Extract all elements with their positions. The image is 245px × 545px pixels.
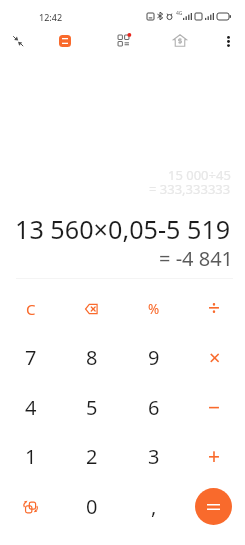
button[interactable]: Unit converter	[0, 482, 61, 531]
staticText: %	[148, 300, 160, 318]
staticText: 13 560×0,05-5 519	[15, 212, 231, 246]
staticText: +	[208, 442, 221, 471]
staticText: 15 000÷45	[168, 166, 231, 184]
button[interactable]: 0	[61, 482, 122, 531]
staticText: C	[26, 299, 36, 319]
button[interactable]: 6	[123, 383, 184, 432]
staticText: 1	[25, 443, 37, 470]
staticText: 7	[25, 344, 37, 371]
staticText: ,	[151, 493, 157, 520]
staticText: = -4 841	[159, 245, 234, 272]
button[interactable]: Apps	[110, 27, 136, 53]
staticText: 0	[86, 493, 98, 520]
staticText: 8	[86, 344, 98, 371]
button[interactable]: 2	[61, 432, 122, 481]
button[interactable]: C	[0, 284, 61, 333]
staticText: 6	[148, 394, 160, 421]
button[interactable]: 7	[0, 333, 61, 382]
staticText: ÷	[208, 294, 221, 323]
button[interactable]: Backspace	[61, 284, 122, 333]
staticText: 3	[148, 443, 160, 470]
staticText: = 333,333333	[149, 180, 231, 198]
staticText: 5	[86, 394, 98, 421]
staticText: 12:42	[39, 11, 63, 23]
button[interactable]: Equals	[195, 488, 232, 525]
button[interactable]: Calculator	[52, 28, 78, 54]
button[interactable]: 1	[0, 432, 61, 481]
button[interactable]: 3	[123, 432, 184, 481]
button[interactable]: −	[184, 383, 245, 432]
button[interactable]: +	[184, 432, 245, 481]
button[interactable]: ,	[123, 482, 184, 531]
button[interactable]: ×	[184, 333, 245, 382]
button[interactable]: 5	[61, 383, 122, 432]
button[interactable]: Collapse	[5, 28, 31, 54]
button[interactable]: Mortgage calculator	[167, 27, 193, 53]
button[interactable]: 4	[0, 383, 61, 432]
staticText: ×	[209, 344, 221, 371]
button[interactable]: %	[123, 284, 184, 333]
staticText: 4	[25, 394, 37, 421]
button[interactable]: 8	[61, 333, 122, 382]
staticText: 2	[86, 443, 98, 470]
button[interactable]: More options	[215, 28, 241, 54]
other: Backspace	[85, 304, 98, 314]
button[interactable]: 9	[123, 333, 184, 382]
button[interactable]: ÷	[184, 284, 245, 333]
button[interactable]: Equals	[184, 482, 245, 531]
staticText: 4G	[176, 10, 183, 17]
staticText: −	[208, 393, 221, 422]
staticText: 9	[148, 344, 160, 371]
other: Unit converter	[23, 500, 38, 513]
